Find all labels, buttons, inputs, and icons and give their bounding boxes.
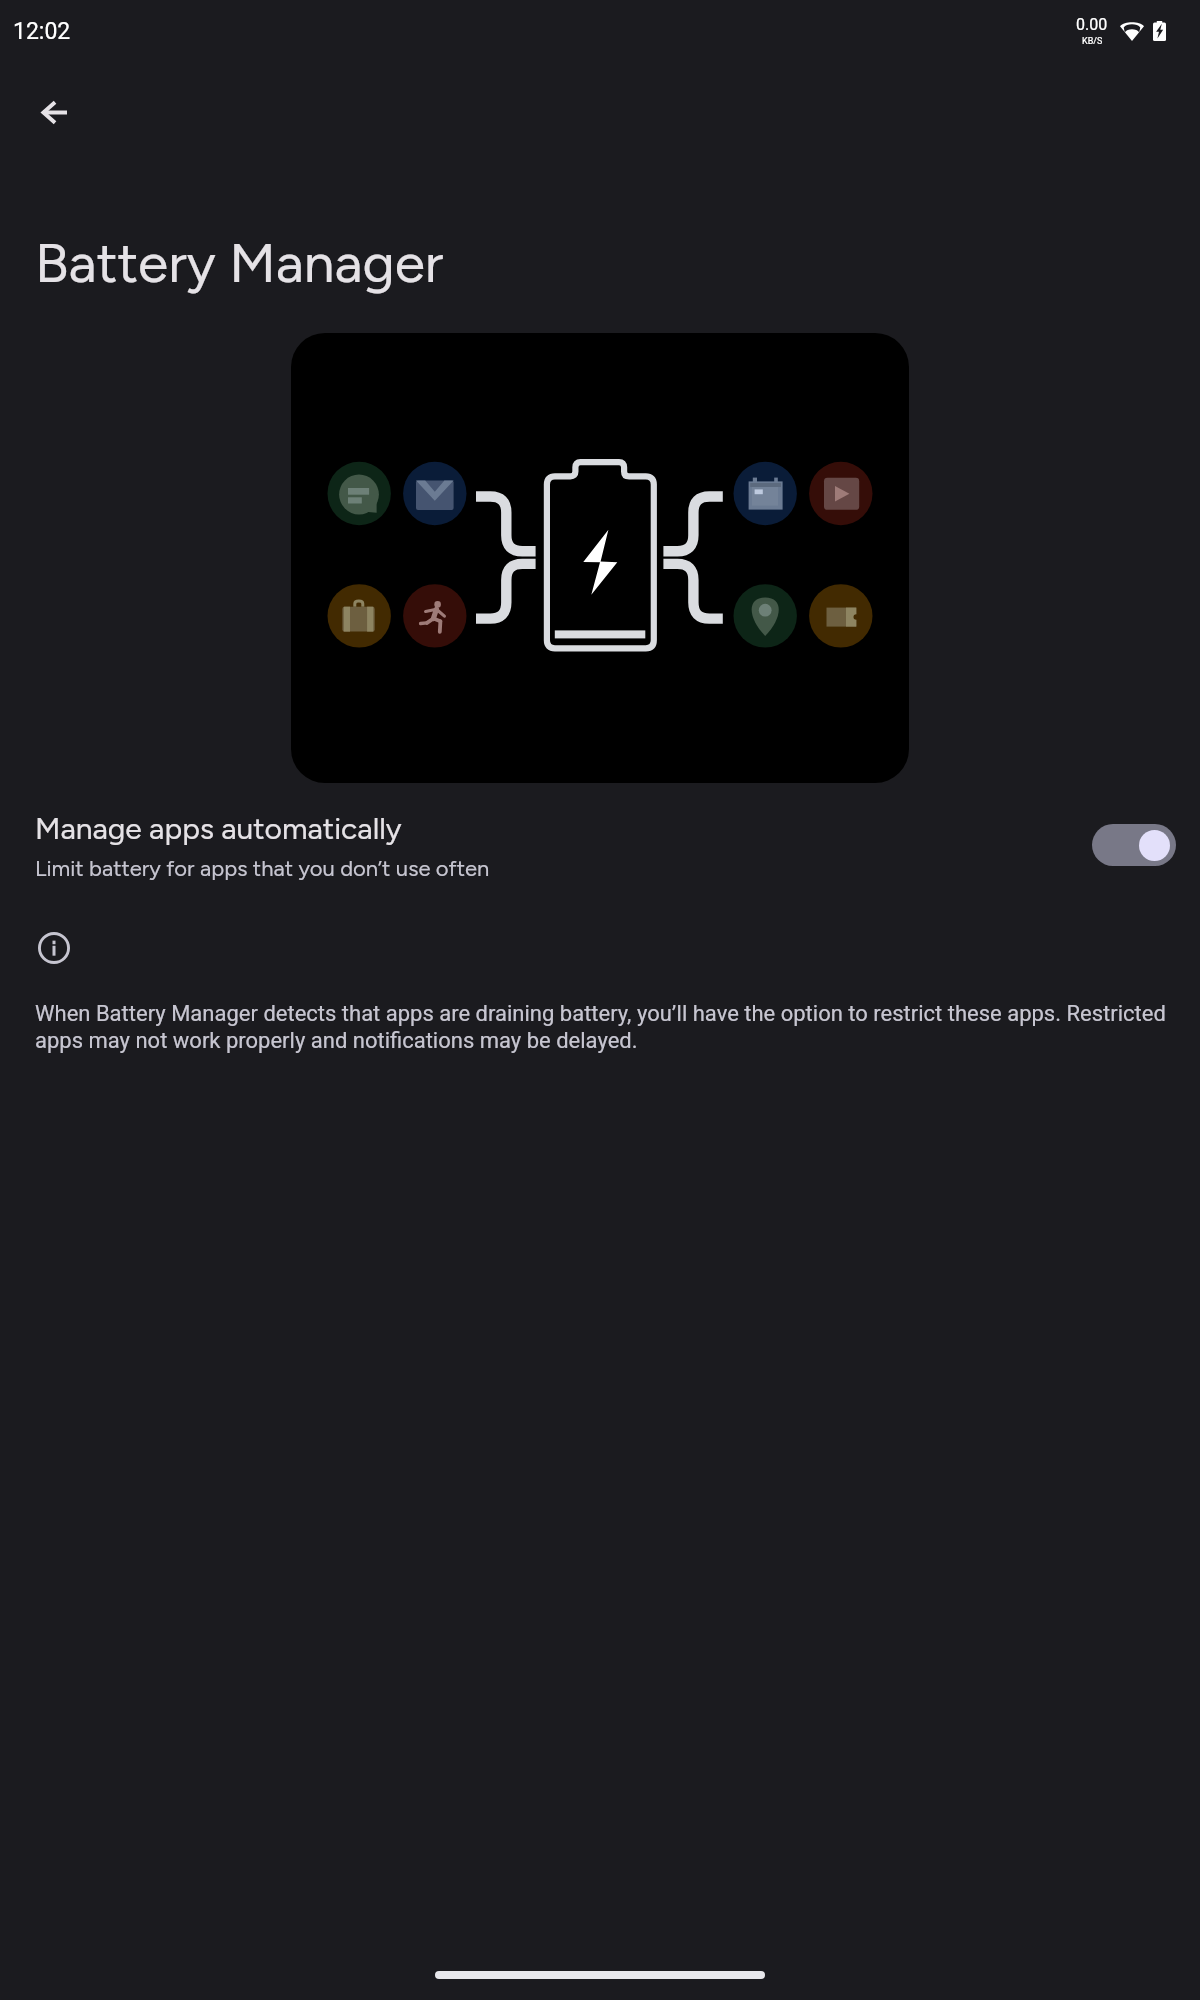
button[interactable]: Manage apps automatically [1092, 824, 1176, 866]
staticText: 12:02 [13, 18, 71, 45]
staticText: Manage apps automatically [35, 810, 402, 846]
staticText: Battery Manager [35, 230, 444, 296]
button[interactable]: Back [17, 75, 91, 149]
button[interactable]: Manage apps automatically [0, 798, 1200, 892]
staticText: 0.00 [1076, 15, 1108, 34]
staticText: When Battery Manager detects that apps a… [35, 1001, 1200, 1053]
staticText: Limit battery for apps that you don’t us… [35, 855, 490, 881]
staticText: KB/S [1082, 36, 1103, 47]
